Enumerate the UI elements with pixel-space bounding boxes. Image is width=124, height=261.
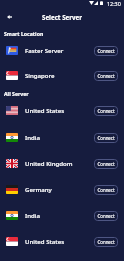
button[interactable]: United States <box>0 229 124 255</box>
button[interactable]: Connect <box>94 133 118 143</box>
staticText: Connect <box>97 187 115 193</box>
staticText: Faster Server <box>25 46 64 54</box>
staticText: Connect <box>97 213 115 219</box>
button[interactable]: Back <box>2 10 16 24</box>
staticText: Connect <box>97 73 115 79</box>
button[interactable]: Connect <box>94 106 118 116</box>
button[interactable]: Connect <box>94 211 118 221</box>
staticText: 12:30 <box>107 0 121 7</box>
staticText: Connect <box>97 135 115 141</box>
button[interactable]: United States <box>0 98 124 124</box>
staticText: India <box>25 211 40 219</box>
staticText: Select Server <box>42 13 82 21</box>
staticText: All Server <box>4 90 29 97</box>
staticText: Connect <box>97 161 115 167</box>
staticText: Germany <box>25 185 52 193</box>
button[interactable]: United Kingdom <box>0 151 124 177</box>
button[interactable]: Singapore <box>0 63 124 89</box>
staticText: United States <box>25 237 65 245</box>
staticText: Connect <box>97 108 115 114</box>
button[interactable]: Faster Server <box>0 38 124 64</box>
staticText: India <box>25 133 40 141</box>
button[interactable]: Connect <box>94 46 118 56</box>
staticText: Smart Location <box>4 30 44 37</box>
button[interactable]: India <box>0 203 124 229</box>
button[interactable]: India <box>0 125 124 151</box>
staticText: Connect <box>97 239 115 245</box>
staticText: United States <box>25 106 65 114</box>
button[interactable]: Connect <box>94 159 118 169</box>
button[interactable]: Connect <box>94 71 118 81</box>
button[interactable]: Germany <box>0 177 124 203</box>
button[interactable]: Connect <box>94 237 118 247</box>
staticText: Singapore <box>25 71 55 79</box>
staticText: Connect <box>97 48 115 54</box>
button[interactable]: Connect <box>94 185 118 195</box>
staticText: United Kingdom <box>25 159 73 167</box>
